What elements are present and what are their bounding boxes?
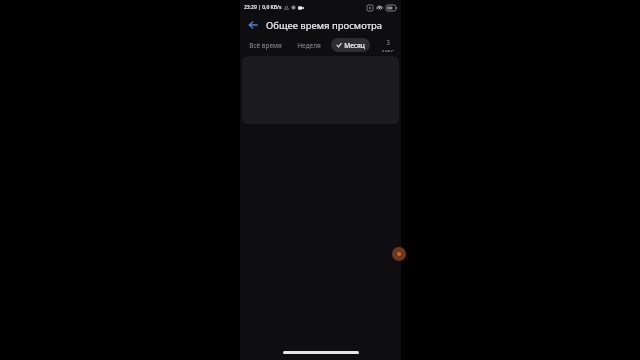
button[interactable]: Всё время: [244, 38, 287, 52]
button[interactable]: Back: [244, 16, 262, 34]
staticText: Месяц: [344, 41, 365, 50]
button[interactable]: Месяц: [331, 38, 370, 52]
button[interactable]: Неделя: [292, 38, 326, 52]
staticText: Всё время: [249, 41, 282, 50]
staticText: 3 мес: [380, 38, 396, 52]
button[interactable]: 3 мес: [375, 38, 401, 52]
staticText: 23:29 | 0,0 KB/s: [244, 4, 282, 11]
staticText: Общее время просмотра: [266, 19, 383, 32]
staticText: Неделя: [297, 41, 321, 50]
other: Indicator: [392, 247, 406, 261]
